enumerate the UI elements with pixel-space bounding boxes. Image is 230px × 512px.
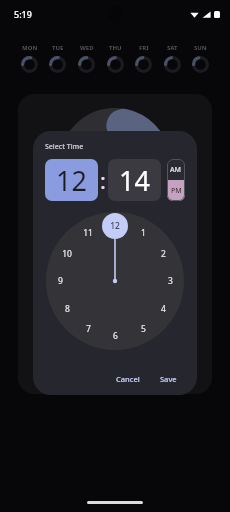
staticText: FRI bbox=[139, 44, 149, 52]
staticText: 10 bbox=[62, 248, 72, 260]
button[interactable]: THU bbox=[106, 44, 125, 73]
staticText: 12 bbox=[110, 220, 120, 232]
staticText: 6 bbox=[113, 330, 118, 342]
staticText: TUE bbox=[52, 44, 64, 52]
button[interactable]: WED bbox=[77, 44, 96, 73]
staticText: SUN bbox=[194, 44, 207, 52]
button[interactable]: 12 bbox=[45, 159, 98, 201]
button[interactable]: Save bbox=[152, 369, 185, 389]
button[interactable]: SUN bbox=[191, 44, 210, 73]
staticText: 7 bbox=[86, 323, 91, 335]
staticText: 11 bbox=[83, 227, 93, 239]
staticText: Select Time bbox=[45, 142, 84, 152]
staticText: PM bbox=[171, 186, 182, 196]
staticText: 3 bbox=[168, 275, 173, 287]
staticText: SAT bbox=[167, 44, 178, 52]
button[interactable] bbox=[18, 94, 212, 394]
button[interactable]: TUE bbox=[48, 44, 67, 73]
staticText: 14 bbox=[119, 162, 150, 199]
staticText: 1 bbox=[141, 227, 146, 239]
staticText: 2 bbox=[161, 248, 166, 260]
button[interactable]: Cancel bbox=[108, 369, 148, 389]
staticText: THU bbox=[109, 44, 122, 52]
staticText: 12 bbox=[56, 162, 87, 199]
staticText: 5:19 bbox=[14, 8, 32, 20]
staticText: Cancel bbox=[116, 374, 140, 384]
staticText: WED bbox=[80, 44, 94, 52]
button[interactable]: 1 bbox=[46, 212, 184, 350]
button[interactable]: MON bbox=[20, 44, 39, 73]
staticText: 5 bbox=[141, 323, 146, 335]
button[interactable]: PM bbox=[167, 180, 185, 201]
button[interactable]: AM bbox=[167, 159, 185, 180]
staticText: 9 bbox=[58, 275, 63, 287]
button[interactable]: SAT bbox=[163, 44, 182, 73]
staticText: MON bbox=[22, 44, 38, 52]
button[interactable]: FRI bbox=[134, 44, 153, 73]
staticText: Save bbox=[160, 374, 177, 384]
button[interactable]: 14 bbox=[108, 159, 161, 201]
staticText: 4 bbox=[161, 303, 166, 315]
staticText: 8 bbox=[65, 303, 70, 315]
staticText: : bbox=[100, 165, 106, 195]
staticText: AM bbox=[170, 165, 182, 175]
